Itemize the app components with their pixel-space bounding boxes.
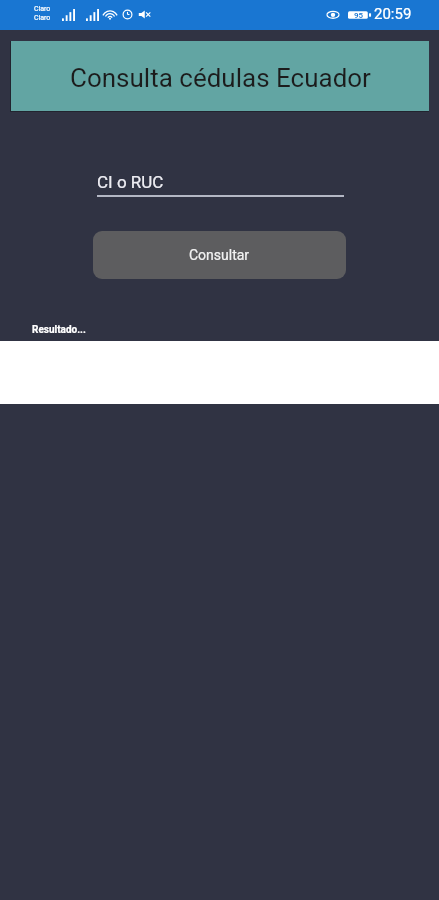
staticText: Consultar [189, 247, 250, 263]
other: Battery 95 percent [348, 9, 371, 21]
staticText: Claro [34, 14, 51, 22]
other: Mobile signal SIM 1 [62, 9, 75, 21]
button[interactable]: CI o RUC [97, 172, 344, 197]
other: Eye comfort mode [327, 9, 339, 20]
other: Wi-Fi [103, 9, 117, 20]
staticText: 95 [354, 11, 364, 20]
other: Sound muted [138, 9, 151, 20]
staticText: Resultado... [32, 324, 86, 336]
button[interactable]: Consultar [93, 231, 346, 279]
staticText: Consulta cédulas Ecuador [70, 63, 371, 93]
button[interactable]: Consulta cédulas Ecuador [11, 41, 429, 111]
staticText: Claro [34, 5, 51, 13]
staticText: CI o RUC [97, 172, 164, 192]
other: Alarm set [122, 9, 133, 20]
other: Mobile signal SIM 2 [86, 9, 99, 21]
staticText: 20:59 [374, 5, 412, 23]
